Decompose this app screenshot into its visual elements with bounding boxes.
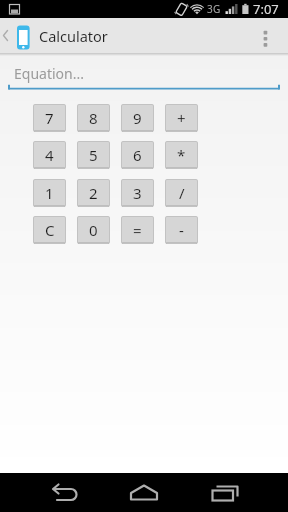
- staticText: 3G: [207, 2, 221, 16]
- staticText: 7: [45, 108, 54, 128]
- staticText: +: [177, 108, 186, 128]
- button[interactable]: -: [165, 216, 198, 244]
- button[interactable]: *: [165, 141, 198, 169]
- staticText: 9: [133, 108, 142, 128]
- button[interactable]: [258, 18, 288, 53]
- staticText: 4: [45, 145, 54, 165]
- button[interactable]: [120, 473, 168, 512]
- button[interactable]: 4: [33, 141, 66, 169]
- staticText: =: [133, 220, 142, 240]
- staticText: 7:07: [253, 0, 279, 18]
- button[interactable]: 8: [77, 104, 110, 132]
- button[interactable]: 7: [33, 104, 66, 132]
- staticText: Equation...: [14, 64, 84, 83]
- staticText: 8: [89, 108, 98, 128]
- button[interactable]: +: [165, 104, 198, 132]
- button[interactable]: 1: [33, 179, 66, 207]
- button[interactable]: =: [121, 216, 154, 244]
- button[interactable]: 2: [77, 179, 110, 207]
- button[interactable]: /: [165, 179, 198, 207]
- button[interactable]: 6: [121, 141, 154, 169]
- staticText: -: [179, 220, 184, 240]
- button[interactable]: 0: [77, 216, 110, 244]
- button[interactable]: 9: [121, 104, 154, 132]
- button[interactable]: [36, 473, 84, 512]
- staticText: *: [177, 145, 186, 165]
- button[interactable]: C: [33, 216, 66, 244]
- staticText: 5: [89, 145, 98, 165]
- button[interactable]: [201, 473, 249, 512]
- staticText: 1: [45, 183, 54, 203]
- staticText: 0: [89, 220, 98, 240]
- staticText: 6: [133, 145, 142, 165]
- staticText: Calculator: [39, 26, 108, 46]
- staticText: 3: [133, 183, 142, 203]
- button[interactable]: 3: [121, 179, 154, 207]
- staticText: /: [179, 183, 185, 203]
- button[interactable]: 5: [77, 141, 110, 169]
- button[interactable]: Equation...: [8, 56, 280, 90]
- staticText: 2: [89, 183, 98, 203]
- button[interactable]: [0, 18, 36, 53]
- staticText: C: [45, 220, 55, 240]
